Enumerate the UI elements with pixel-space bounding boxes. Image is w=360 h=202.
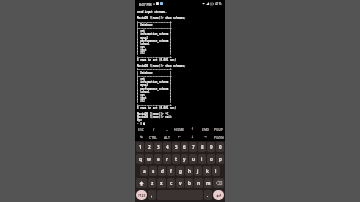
button[interactable]: ALT <box>160 133 173 141</box>
button[interactable]: . <box>204 190 212 200</box>
staticText: | information_schema | <box>137 32 172 36</box>
staticText: l <box>215 168 217 174</box>
staticText: +--------------------+ <box>137 74 172 78</box>
button[interactable]: b <box>185 178 193 188</box>
button[interactable]: m <box>204 178 212 188</box>
staticText: w <box>147 156 151 162</box>
button[interactable]: , <box>148 190 156 200</box>
button[interactable]: o <box>207 154 215 164</box>
staticText: MariaDB [(none)]> ^C <box>137 112 169 116</box>
button[interactable]: p <box>216 154 224 164</box>
staticText: r <box>166 156 169 162</box>
staticText: ↹ <box>140 135 143 139</box>
button[interactable]: d <box>158 166 166 176</box>
staticText: | school | <box>137 42 172 46</box>
button[interactable]: q <box>136 154 144 164</box>
staticText: . <box>207 192 209 198</box>
staticText: | test | <box>137 96 172 100</box>
button[interactable]: ← <box>173 133 186 141</box>
button[interactable]: CTRL <box>147 133 160 141</box>
button[interactable]: c <box>167 178 175 188</box>
button[interactable]: – <box>160 125 173 133</box>
button[interactable]: Backspace <box>213 178 224 188</box>
staticText: ↑ <box>191 127 194 131</box>
staticText: 8 <box>201 144 204 150</box>
staticText: t <box>175 156 177 162</box>
staticText: , <box>151 192 153 198</box>
staticText: Bye <box>137 118 142 122</box>
staticText: | test | <box>137 48 172 52</box>
button[interactable]: / <box>147 125 160 133</box>
staticText: d <box>161 168 164 174</box>
staticText: c <box>170 180 173 186</box>
button[interactable]: HOME <box>173 125 186 133</box>
button[interactable]: l <box>212 166 220 176</box>
staticText: MariaDB [(none)]> show schemas; <box>137 16 186 20</box>
staticText: ?123 <box>138 193 146 198</box>
button[interactable]: 8 <box>198 142 206 152</box>
button[interactable]: PGDN <box>212 133 225 141</box>
button[interactable]: w <box>145 154 153 164</box>
button[interactable]: 7 <box>189 142 197 152</box>
staticText: ESC <box>138 127 144 132</box>
staticText: o <box>210 156 213 162</box>
button[interactable]: END <box>199 125 212 133</box>
staticText: | performance_schema | <box>137 39 172 43</box>
button[interactable]: r <box>163 154 171 164</box>
button[interactable]: s <box>149 166 157 176</box>
button[interactable]: f <box>167 166 175 176</box>
button[interactable]: j <box>194 166 202 176</box>
button[interactable]: 9 <box>207 142 215 152</box>
button[interactable]: y <box>181 154 188 164</box>
button[interactable]: Enter <box>213 190 224 200</box>
button[interactable]: 1 <box>136 142 144 152</box>
staticText: 8 rows in set (0.001 sec) <box>137 106 177 110</box>
staticText: / <box>153 127 155 132</box>
button[interactable]: h <box>185 166 193 176</box>
staticText: 4 <box>166 144 169 150</box>
staticText: +--------------------+ <box>137 67 172 71</box>
button[interactable]: PGUP <box>212 125 225 133</box>
button[interactable]: g <box>176 166 184 176</box>
button[interactable]: z <box>148 178 156 188</box>
staticText: +--------------------+ <box>137 26 172 30</box>
staticText: s <box>152 168 155 174</box>
button[interactable]: 3 <box>154 142 162 152</box>
button[interactable]: ?123 <box>136 190 147 200</box>
button[interactable]: → <box>199 133 212 141</box>
staticText: u <box>192 156 195 162</box>
button[interactable]: v <box>176 178 184 188</box>
staticText: HOME <box>174 127 185 132</box>
button[interactable]: ESC <box>135 125 147 133</box>
button[interactable]: ↓ <box>186 133 199 141</box>
button[interactable]: ↑ <box>186 125 199 133</box>
staticText: +--------------------+ <box>137 55 172 59</box>
button[interactable]: Shift <box>136 178 147 188</box>
staticText: | mysql | <box>137 36 172 40</box>
button[interactable]: 6 <box>181 142 188 152</box>
button[interactable]: a <box>140 166 148 176</box>
button[interactable]: i <box>198 154 206 164</box>
staticText: q <box>139 156 142 162</box>
staticText: 3 <box>157 144 160 150</box>
button[interactable]: t <box>172 154 180 164</box>
button[interactable]: 0 <box>216 142 224 152</box>
button[interactable]: 2 <box>145 142 153 152</box>
staticText: | Database | <box>137 23 172 27</box>
staticText: MariaDB [(none)]> show schemas; <box>137 64 186 68</box>
button[interactable]: u <box>189 154 197 164</box>
button[interactable]: n <box>194 178 203 188</box>
staticText: m <box>206 180 211 186</box>
button[interactable]: 4 <box>163 142 171 152</box>
staticText: PGDN <box>214 135 224 140</box>
button[interactable]: ↹ <box>135 133 147 141</box>
button[interactable]: x <box>157 178 166 188</box>
staticText: | Database | <box>137 71 172 75</box>
staticText: | XYZ | <box>137 51 172 55</box>
button[interactable]: 5 <box>172 142 180 152</box>
button[interactable]: e <box>154 154 162 164</box>
staticText: p <box>219 156 222 162</box>
button[interactable]: k <box>203 166 211 176</box>
staticText: ALT <box>164 135 170 140</box>
